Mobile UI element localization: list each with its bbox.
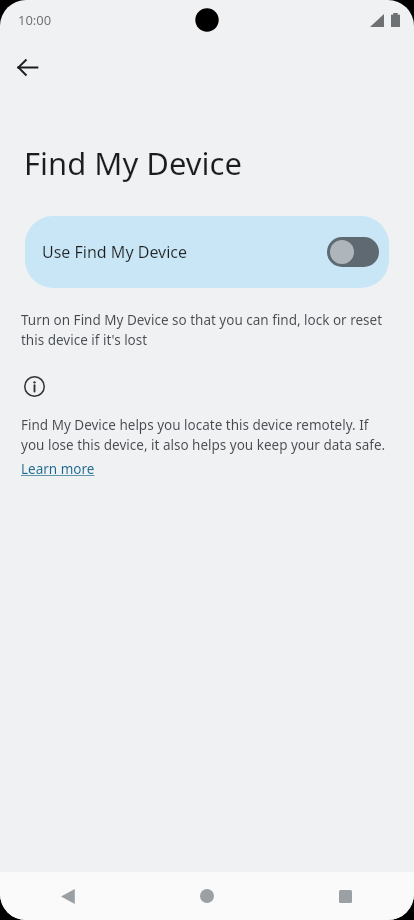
button[interactable]: Learn more	[21, 460, 95, 478]
staticText: Find My Device	[24, 142, 242, 184]
button[interactable]: Back	[7, 47, 47, 87]
button[interactable]: Information	[21, 373, 48, 400]
staticText: 10:00	[18, 11, 52, 29]
button[interactable]: Use Find My Device	[25, 216, 389, 288]
staticText: Learn more	[21, 460, 95, 478]
staticText: Use Find My Device	[42, 241, 188, 263]
button[interactable]: Home	[138, 872, 276, 920]
staticText: Find My Device helps you locate this dev…	[21, 416, 393, 454]
button[interactable]: Recent apps	[276, 872, 414, 920]
button[interactable]: Back	[0, 872, 138, 920]
button[interactable]: Use Find My Device toggle	[327, 237, 379, 267]
staticText: Turn on Find My Device so that you can f…	[21, 311, 393, 349]
